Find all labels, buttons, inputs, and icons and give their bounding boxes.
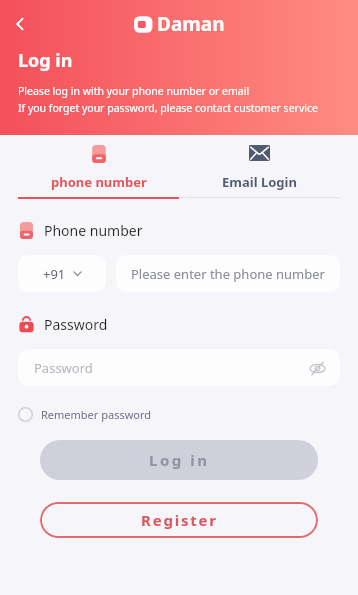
button[interactable]: +91 xyxy=(18,255,106,292)
button[interactable]: phone number xyxy=(18,145,179,197)
staticText: If you forget your password, please cont… xyxy=(18,101,318,115)
staticText: Register xyxy=(141,510,218,530)
staticText: Daman xyxy=(157,11,225,37)
button[interactable]: Show password xyxy=(304,355,330,381)
staticText: Log in xyxy=(18,48,73,73)
button[interactable]: Back xyxy=(4,8,36,40)
button[interactable]: Remember password xyxy=(18,407,152,422)
staticText: Please log in with your phone number or … xyxy=(18,84,250,98)
staticText: Password xyxy=(44,315,108,334)
staticText: Phone number xyxy=(44,221,143,240)
button[interactable]: Register xyxy=(40,502,318,538)
button[interactable]: Log in xyxy=(40,440,318,480)
staticText: phone number xyxy=(51,173,147,191)
button[interactable]: Please enter the phone number xyxy=(116,255,340,292)
button[interactable]: Email Login xyxy=(179,145,340,197)
staticText: Email Login xyxy=(222,173,297,191)
staticText: Log in xyxy=(149,450,210,470)
staticText: Remember password xyxy=(41,407,152,422)
staticText: Password xyxy=(34,359,93,377)
staticText: +91 xyxy=(43,265,66,283)
staticText: Please enter the phone number xyxy=(131,265,325,283)
button[interactable]: Password xyxy=(18,349,340,386)
